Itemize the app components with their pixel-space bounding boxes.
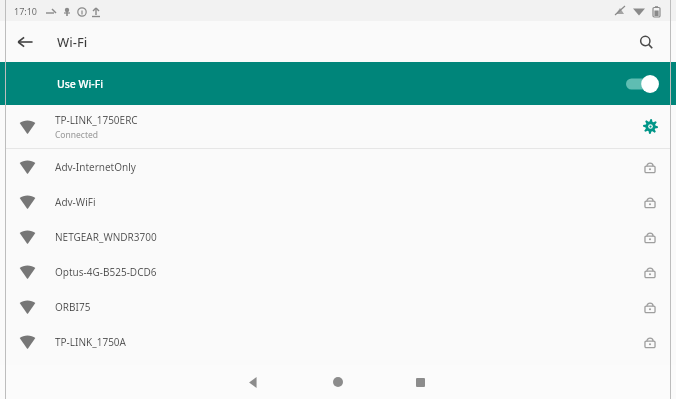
staticText: Use Wi-Fi xyxy=(57,77,104,91)
button[interactable]: Secured network xyxy=(624,324,676,359)
button[interactable]: Back xyxy=(10,27,40,57)
staticText: Wi-Fi xyxy=(57,33,88,51)
staticText: NETGEAR_WNDR3700 xyxy=(55,230,157,244)
button[interactable]: Secured network xyxy=(624,254,676,289)
button[interactable]: Secured network xyxy=(624,219,676,254)
staticText: Optus-4G-B525-DCD6 xyxy=(55,265,157,279)
button[interactable]: Home xyxy=(325,369,351,395)
button[interactable]: Use Wi-Fi xyxy=(0,62,676,105)
button[interactable]: TP-LINK_1750A xyxy=(0,324,676,359)
staticText: ORBI75 xyxy=(55,300,91,314)
staticText: TP-LINK_1750ERC xyxy=(55,113,138,127)
button[interactable]: Recent apps xyxy=(407,369,433,395)
staticText: Adv-InternetOnly xyxy=(55,160,136,174)
button[interactable]: Secured network xyxy=(624,184,676,219)
button[interactable]: Secured network xyxy=(624,149,676,184)
button[interactable]: TP-LINK_1750ERC xyxy=(0,105,676,148)
button[interactable]: Network settings xyxy=(624,105,676,148)
staticText: 17:10 xyxy=(14,5,38,17)
button[interactable]: Optus-4G-B525-DCD6 xyxy=(0,254,676,289)
button[interactable]: Secured network xyxy=(624,289,676,324)
button[interactable]: NETGEAR_WNDR3700 xyxy=(0,219,676,254)
staticText: TP-LINK_1750A xyxy=(55,335,126,349)
staticText: Connected xyxy=(55,129,98,141)
button[interactable]: Back xyxy=(240,369,266,395)
button[interactable]: Adv-InternetOnly xyxy=(0,149,676,184)
button[interactable]: Adv-WiFi xyxy=(0,184,676,219)
staticText: Adv-WiFi xyxy=(55,195,96,209)
button[interactable]: Search xyxy=(632,28,660,56)
other: Wi-Fi toggle xyxy=(626,72,660,96)
button[interactable]: ORBI75 xyxy=(0,289,676,324)
